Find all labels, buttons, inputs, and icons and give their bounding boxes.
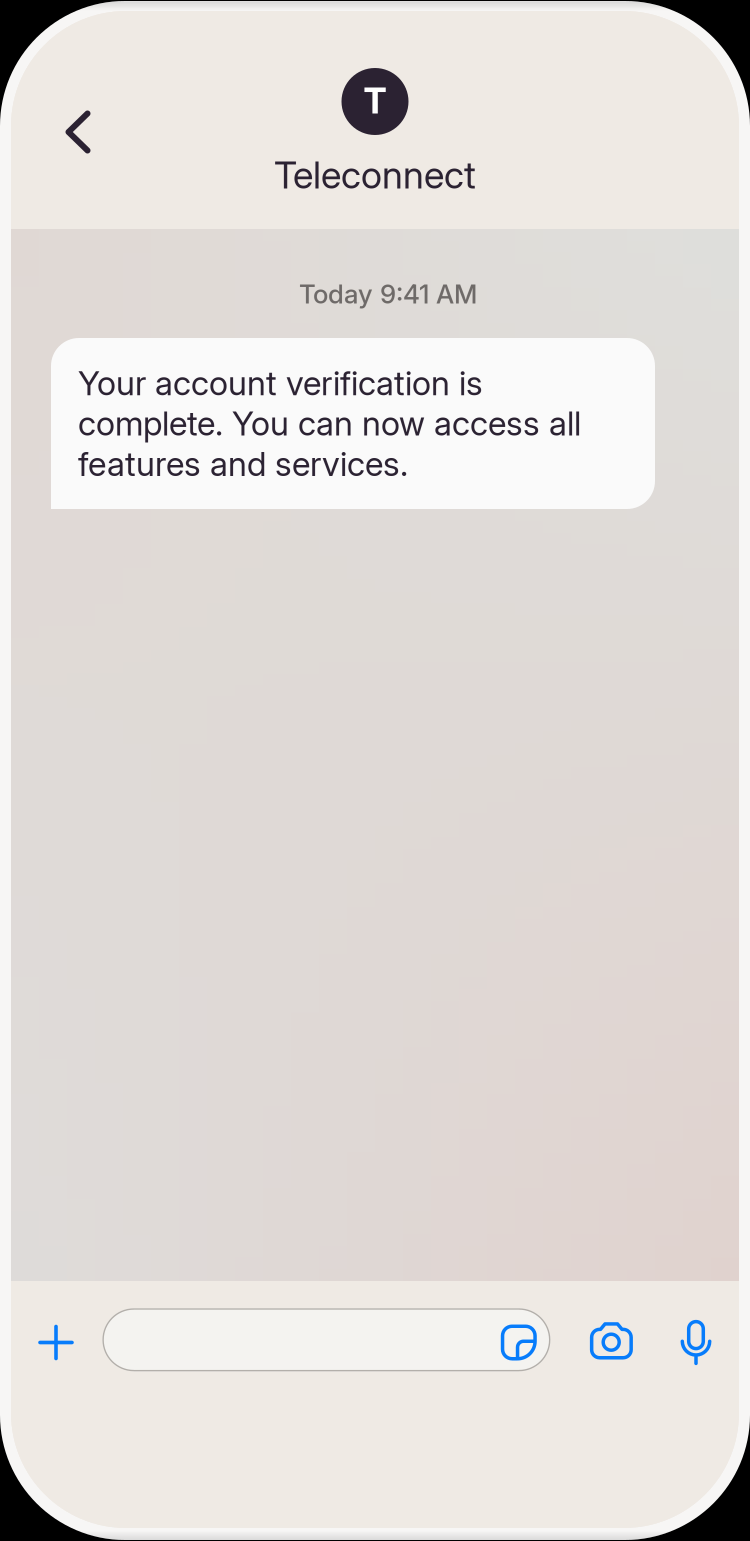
button[interactable]: Stickers <box>491 1314 547 1370</box>
button[interactable]: Camera <box>574 1304 648 1378</box>
staticText: T <box>363 79 386 122</box>
button[interactable]: Add attachment <box>17 1303 95 1381</box>
staticText: Teleconnect <box>274 152 476 198</box>
button[interactable]: Back <box>37 91 119 173</box>
button[interactable]: Record audio <box>662 1308 730 1376</box>
staticText: Today 9:41 AM <box>299 278 477 310</box>
staticText: Your account verification is complete. Y… <box>78 363 581 484</box>
